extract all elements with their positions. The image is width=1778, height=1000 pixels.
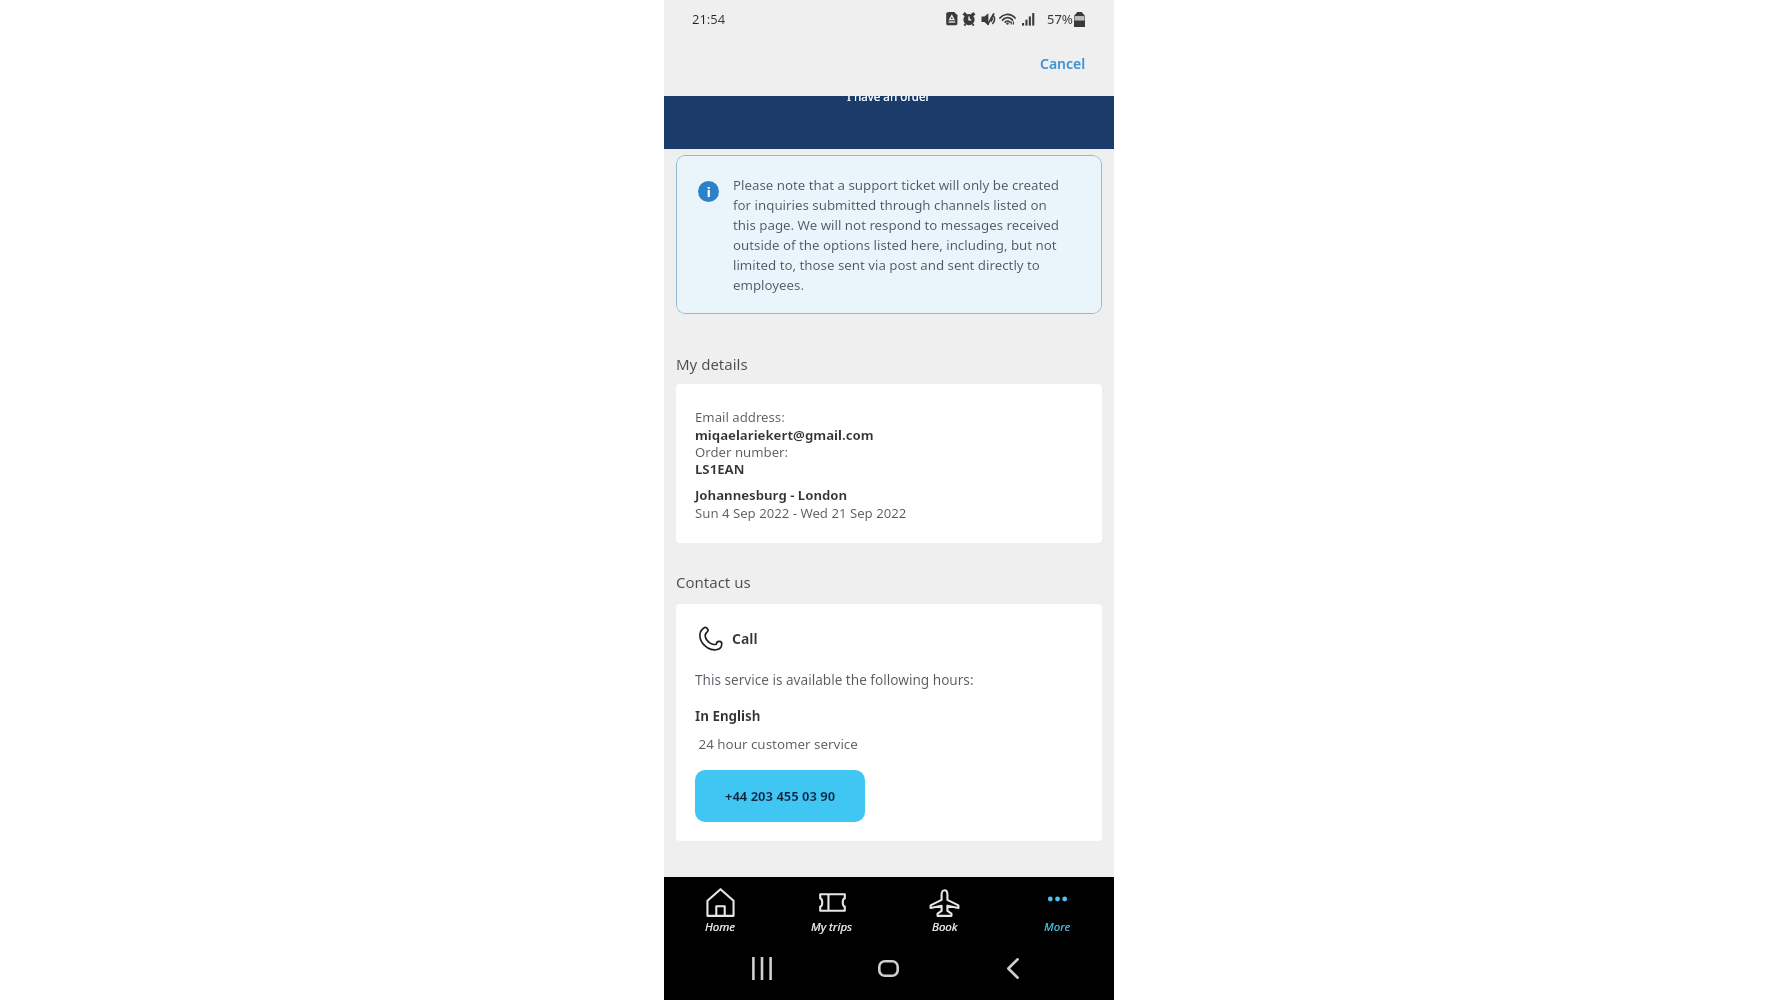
staticText: Home	[705, 919, 736, 935]
button[interactable]: More	[1001, 877, 1114, 937]
staticText: Call	[732, 629, 758, 648]
staticText: Cancel	[1040, 54, 1086, 73]
staticText: My trips	[811, 919, 853, 935]
staticText: 21:54	[692, 10, 726, 28]
button[interactable]: My trips	[776, 877, 888, 937]
staticText: Please note that a support ticket will o…	[733, 176, 1059, 294]
staticText: I have an order	[847, 96, 931, 104]
button[interactable]: Recent apps	[726, 937, 798, 1000]
staticText: Email address: miqaelariekert@gmail.com …	[695, 408, 874, 478]
button[interactable]: Home	[664, 877, 776, 937]
staticText: This service is available the following …	[695, 670, 974, 689]
button[interactable]: +44 203 455 03 90	[695, 770, 865, 822]
staticText: Johannesburg - London Sun 4 Sep 2022 - W…	[695, 486, 907, 522]
staticText: 57%	[1047, 10, 1073, 28]
button[interactable]: Cancel	[1020, 46, 1106, 81]
staticText: +44 203 455 03 90	[725, 787, 836, 805]
button[interactable]: I have an order	[664, 96, 1114, 149]
staticText: i	[707, 184, 711, 200]
staticText: Book	[932, 919, 958, 935]
staticText: My details	[676, 354, 748, 374]
button[interactable]: Book	[888, 877, 1001, 937]
button[interactable]: Back	[977, 937, 1049, 1000]
staticText: Contact us	[676, 572, 751, 592]
button[interactable]: Home	[852, 937, 924, 1000]
staticText: More	[1044, 919, 1071, 935]
staticText: In English	[695, 707, 761, 725]
staticText: 24 hour customer service	[695, 735, 858, 753]
